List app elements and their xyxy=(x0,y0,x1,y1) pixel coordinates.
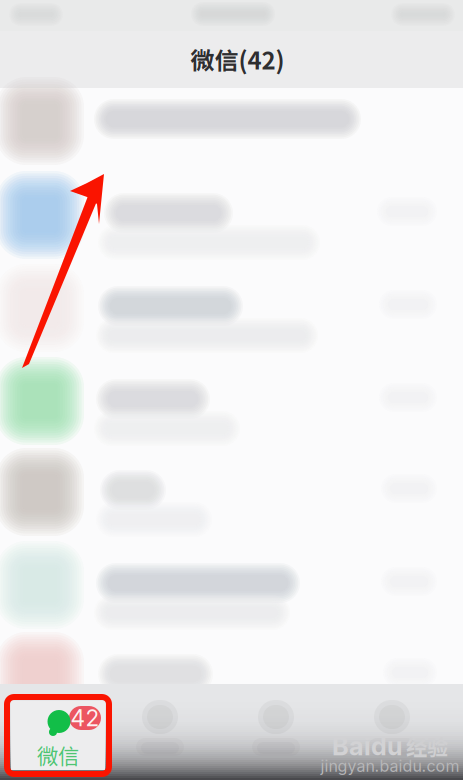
staticText: 经验 xyxy=(406,731,448,761)
staticText: jingyan.baidu.com xyxy=(320,756,459,776)
staticText: 微信 xyxy=(37,740,79,770)
button[interactable]: 42 xyxy=(11,701,105,770)
staticText: Baidu xyxy=(332,731,403,761)
button[interactable]: Discover xyxy=(230,686,322,766)
staticText: 42 xyxy=(70,704,99,732)
button[interactable]: Highlighted WeChat tab xyxy=(7,697,109,774)
button[interactable]: Me xyxy=(346,686,438,766)
button[interactable]: Contacts xyxy=(114,686,206,766)
staticText: 微信(42) xyxy=(190,42,284,76)
